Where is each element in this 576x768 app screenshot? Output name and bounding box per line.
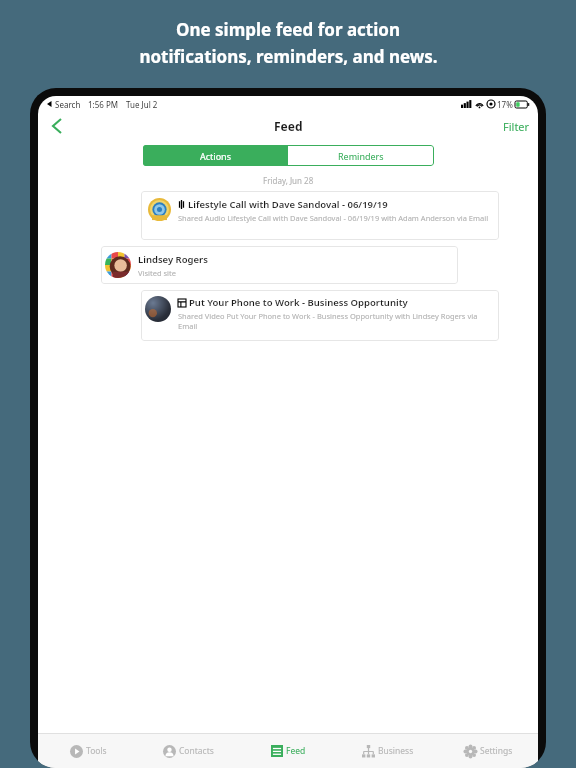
staticText: Feed: [274, 118, 303, 134]
staticText: Actions: [200, 150, 231, 162]
staticText: Reminders: [338, 150, 384, 162]
button[interactable]: Business: [338, 734, 438, 768]
button[interactable]: Feed: [238, 734, 338, 768]
staticText: Shared Audio Lifestyle Call with Dave Sa…: [178, 213, 489, 223]
staticText: Lindsey Rogers: [138, 253, 208, 266]
staticText: notifications, reminders, and news.: [139, 45, 438, 68]
staticText: Filter: [503, 119, 530, 134]
button[interactable]: Tools: [38, 734, 138, 768]
button[interactable]: Settings: [438, 734, 538, 768]
staticText: Lifestyle Call with Dave Sandoval - 06/1…: [188, 198, 388, 211]
button[interactable]: Lindsey Rogers: [101, 246, 458, 284]
button[interactable]: Filter: [503, 119, 530, 134]
staticText: One simple feed for action: [176, 18, 400, 41]
staticText: Feed: [286, 745, 306, 757]
staticText: Contacts: [179, 745, 214, 757]
button[interactable]: Contacts: [138, 734, 238, 768]
button[interactable]: Back: [44, 113, 70, 139]
button[interactable]: Lifestyle Call with Dave Sandoval - 06/1…: [141, 191, 499, 240]
staticText: Visited site: [138, 268, 176, 278]
staticText: Settings: [480, 745, 513, 757]
staticText: Put Your Phone to Work - Business Opport…: [189, 296, 408, 309]
staticText: Business: [378, 745, 414, 757]
staticText: 17%: [497, 99, 513, 110]
button[interactable]: Put Your Phone to Work - Business Opport…: [141, 290, 499, 341]
staticText: Search: [55, 99, 81, 110]
button[interactable]: Actions: [143, 145, 288, 166]
staticText: Tools: [86, 745, 107, 757]
staticText: Tue Jul 2: [126, 99, 158, 110]
staticText: Friday, Jun 28: [263, 175, 314, 186]
button[interactable]: Reminders: [288, 145, 434, 166]
staticText: Shared Video Put Your Phone to Work - Bu…: [178, 311, 492, 331]
staticText: 1:56 PM: [88, 99, 119, 110]
